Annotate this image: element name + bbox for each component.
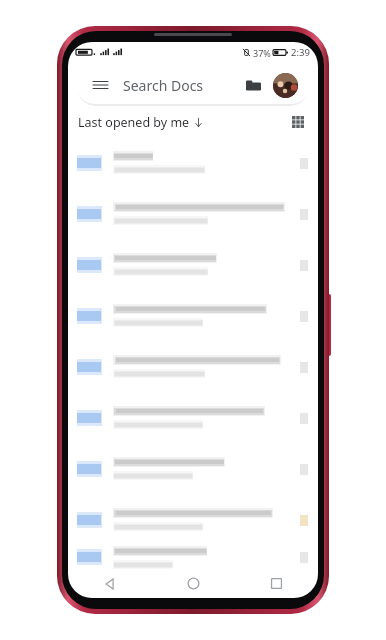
button[interactable] — [68, 443, 318, 494]
staticText: 2:39 — [291, 46, 310, 59]
button[interactable]: Last opened by me — [76, 110, 205, 135]
button[interactable] — [68, 341, 318, 392]
button[interactable]: Open navigation menu — [88, 73, 112, 97]
button[interactable]: Browse folders — [241, 73, 265, 97]
button[interactable] — [68, 239, 318, 290]
button[interactable]: Home — [152, 569, 235, 598]
button[interactable] — [68, 494, 318, 545]
staticText: Last opened by me — [78, 114, 190, 131]
button[interactable]: Switch to grid view — [286, 110, 310, 134]
button[interactable] — [68, 545, 318, 569]
staticText: 37% — [253, 47, 271, 59]
button[interactable] — [68, 137, 318, 188]
button[interactable] — [68, 188, 318, 239]
button[interactable]: Open navigation menu — [76, 66, 310, 104]
staticText: Search Docs — [123, 76, 204, 95]
button[interactable]: Recent apps — [235, 569, 318, 598]
button[interactable]: Google Account — [273, 73, 298, 98]
button[interactable]: Back — [68, 569, 152, 598]
button[interactable] — [68, 392, 318, 443]
button[interactable] — [68, 290, 318, 341]
